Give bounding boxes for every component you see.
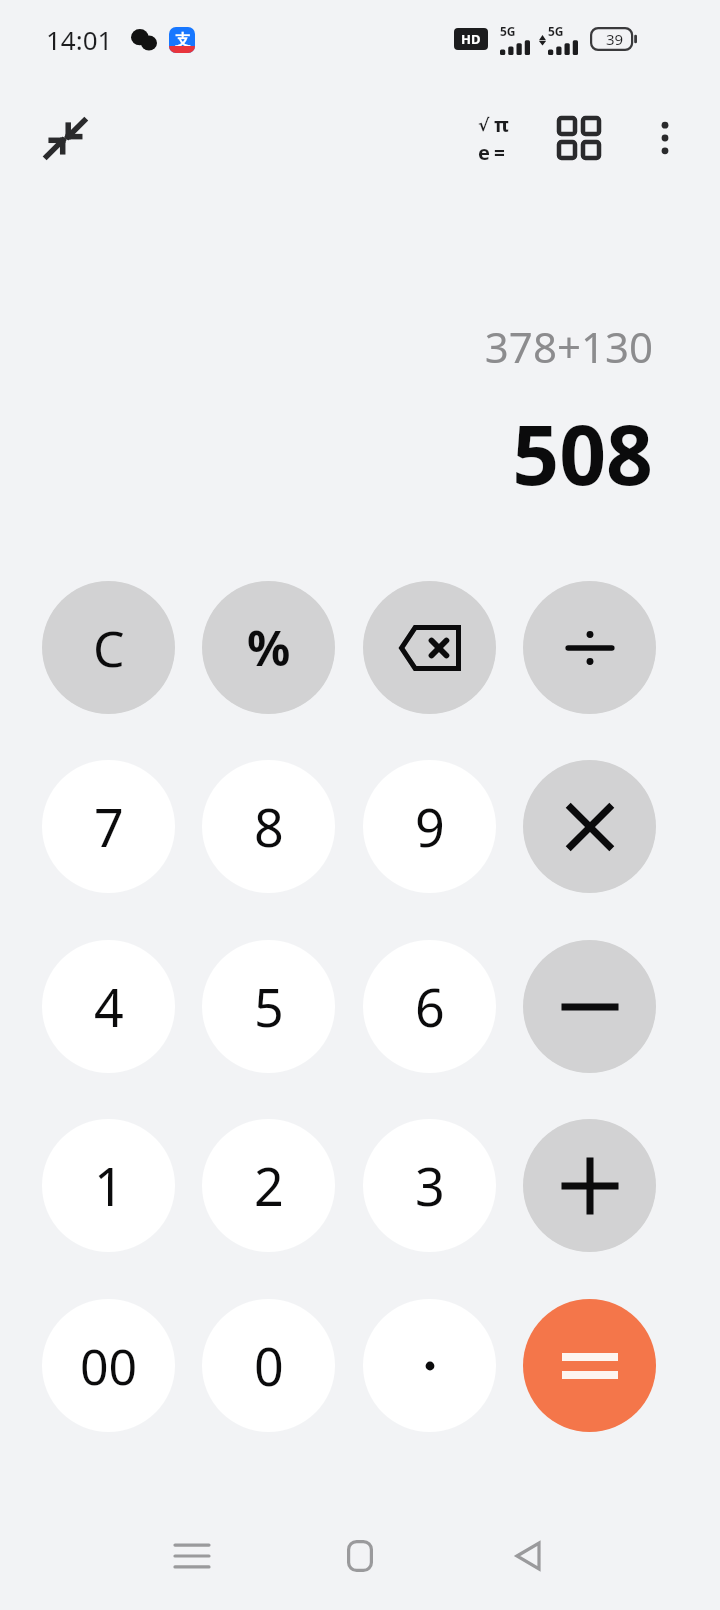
button[interactable]: 0 [202,1299,335,1432]
staticText: 4 [94,971,124,1042]
button[interactable] [523,581,656,714]
staticText: HD [461,30,481,48]
button[interactable] [363,1299,496,1432]
staticText: 9 [415,791,445,862]
staticText: 00 [80,1332,138,1400]
staticText: 5 [254,971,284,1042]
staticText: C [93,614,125,682]
button[interactable]: Back [473,1508,583,1604]
button[interactable]: 4 [42,940,175,1073]
button[interactable]: 00 [42,1299,175,1432]
button[interactable]: Home [305,1508,415,1604]
button[interactable] [523,1119,656,1252]
staticText: 14:01 [46,22,113,57]
staticText: 3 [415,1150,445,1221]
staticText: 508 [512,397,653,509]
button[interactable]: Converter [540,99,618,177]
button[interactable]: 7 [42,760,175,893]
button[interactable]: 5 [202,940,335,1073]
button[interactable] [523,940,656,1073]
button[interactable] [523,760,656,893]
staticText: 2 [254,1150,284,1221]
staticText: 1 [94,1150,124,1221]
button[interactable]: More options [626,99,704,177]
staticText: √ [478,115,490,135]
staticText: 0 [254,1330,284,1401]
button[interactable]: Backspace [363,581,496,714]
staticText: 5G [548,23,564,39]
button[interactable]: C [42,581,175,714]
button[interactable]: Scientific mode [454,99,532,177]
button[interactable] [523,1299,656,1432]
staticText: 378+130 [484,318,653,375]
button[interactable]: 6 [363,940,496,1073]
button[interactable]: 9 [363,760,496,893]
button[interactable]: Recent apps [137,1508,247,1604]
staticText: 7 [94,791,124,862]
staticText: % [247,615,291,680]
staticText: = [494,140,505,166]
staticText: 6 [415,971,445,1042]
staticText: π [494,111,509,138]
button[interactable]: 2 [202,1119,335,1252]
button[interactable]: 8 [202,760,335,893]
staticText: 39 [606,29,624,49]
button[interactable]: 3 [363,1119,496,1252]
staticText: 支 [175,31,190,50]
button[interactable]: % [202,581,335,714]
button[interactable]: 1 [42,1119,175,1252]
staticText: 5G [500,23,516,39]
button[interactable]: Collapse [26,99,104,177]
staticText: 8 [254,791,284,862]
staticText: e [478,139,490,166]
